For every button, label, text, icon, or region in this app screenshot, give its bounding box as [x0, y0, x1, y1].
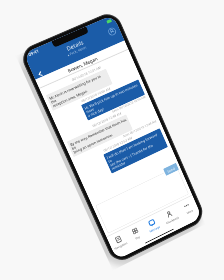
button[interactable]: Checkbook	[158, 204, 183, 229]
button[interactable]: Send	[163, 163, 179, 176]
staticText: Pay	[135, 235, 141, 240]
staticText: Bowen, Megan	[67, 55, 99, 74]
button[interactable]: More	[175, 195, 200, 221]
button[interactable]: Navigation	[106, 229, 132, 255]
staticText: 09:41	[27, 48, 40, 58]
staticText: By the way, Remember that Kevin has be b…	[69, 117, 131, 155]
button[interactable]: Back	[36, 70, 44, 78]
staticText: Navigation	[113, 241, 128, 251]
staticText: 06/12/2018 10:01 AM	[71, 65, 102, 82]
staticText: Details	[65, 38, 85, 52]
staticText: I will do that! I am looking forward to …	[105, 131, 166, 171]
staticText: ▴ Peck, Kevin	[66, 44, 88, 57]
button[interactable]: Pay	[123, 221, 148, 246]
staticText: Seen 06/12/2018 12:48 AM	[122, 119, 158, 138]
staticText: 06/12/2018 12:53 AM	[103, 136, 133, 153]
staticText: Hi, We'll pick him up in two minutes. Ha…	[83, 82, 143, 118]
button[interactable]: Message input	[94, 167, 190, 234]
staticText: Mr. Kevin is now waiting for you in the …	[48, 71, 110, 108]
staticText: Checkbook	[165, 215, 180, 225]
staticText: Seen 06/12/2018 10:04 AM	[111, 95, 147, 114]
staticText: Message	[148, 225, 161, 233]
button[interactable]: Contact info	[107, 26, 117, 37]
staticText: More	[186, 209, 194, 215]
staticText: 06/12/2018 12:48 AM	[92, 111, 122, 128]
button[interactable]: Message	[140, 212, 166, 238]
staticText: 06/12/2018 10:04 AM	[81, 87, 111, 103]
staticText: Send	[166, 166, 176, 174]
